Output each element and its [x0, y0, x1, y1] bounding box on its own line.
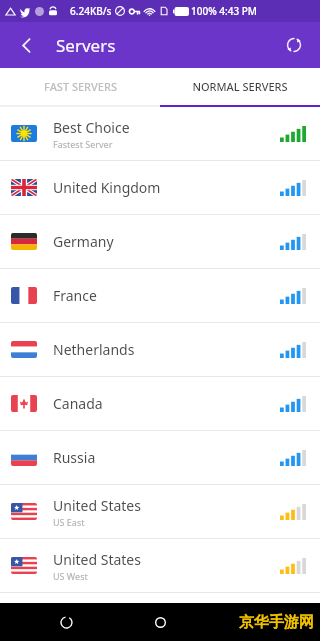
- button[interactable]: Refresh: [276, 27, 312, 63]
- button[interactable]: Home: [146, 608, 174, 636]
- staticText: France: [53, 286, 97, 305]
- staticText: FAST SERVERS: [44, 79, 117, 94]
- button[interactable]: NORMAL SERVERS: [160, 68, 320, 105]
- staticText: United Kingdom: [53, 178, 161, 197]
- staticText: Russia: [53, 448, 96, 467]
- button[interactable]: United Kingdom: [0, 161, 320, 214]
- staticText: Canada: [53, 394, 103, 413]
- button[interactable]: Canada: [0, 377, 320, 430]
- button[interactable]: Russia: [0, 431, 320, 484]
- staticText: NORMAL SERVERS: [192, 79, 288, 94]
- staticText: US East: [53, 516, 85, 528]
- staticText: Netherlands: [53, 340, 135, 359]
- staticText: United States: [53, 496, 141, 515]
- staticText: Germany: [53, 232, 114, 251]
- button[interactable]: United States: [0, 485, 320, 538]
- staticText: Best Choice: [53, 118, 130, 137]
- button[interactable]: Germany: [0, 215, 320, 268]
- staticText: US West: [53, 570, 88, 582]
- button[interactable]: United States: [0, 539, 320, 592]
- button[interactable]: France: [0, 269, 320, 322]
- button[interactable]: Best Choice: [0, 107, 320, 160]
- staticText: United States: [53, 550, 141, 569]
- staticText: 京华手游网: [239, 613, 314, 632]
- staticText: Fastest Server: [53, 138, 113, 150]
- button[interactable]: Back: [8, 27, 44, 63]
- button[interactable]: FAST SERVERS: [0, 68, 160, 105]
- staticText: Servers: [56, 34, 116, 57]
- button[interactable]: Back: [52, 608, 80, 636]
- staticText: 6.24KB/s: [70, 4, 112, 18]
- staticText: 100% 4:43 PM: [191, 4, 258, 18]
- button[interactable]: Netherlands: [0, 323, 320, 376]
